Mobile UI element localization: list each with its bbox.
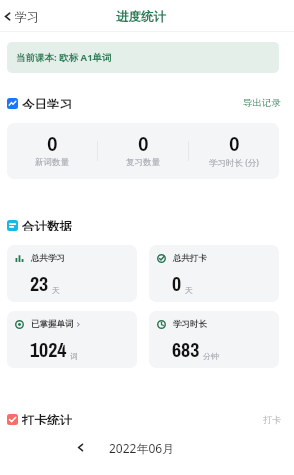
button[interactable]: 0 <box>189 123 279 179</box>
button[interactable]: 学习时长 <box>149 311 279 368</box>
staticText: 词 <box>70 351 78 361</box>
button[interactable]: 已掌握单词 <box>7 311 137 368</box>
staticText: 分钟 <box>203 351 219 361</box>
staticText: 当前课本: 欧标 A1单词 <box>16 51 112 64</box>
staticText: 天 <box>185 285 193 295</box>
staticText: 0 <box>47 130 58 156</box>
staticText: 23 <box>30 270 49 297</box>
staticText: 2022年06月 <box>109 440 175 456</box>
staticText: 学习时长 <box>173 319 207 330</box>
button[interactable]: Previous month <box>71 438 89 456</box>
staticText: 0 <box>138 130 149 156</box>
staticText: 今日学习 <box>22 97 72 109</box>
staticText: 学习时长 (分) <box>209 157 259 169</box>
staticText: 进度统计 <box>116 9 166 25</box>
staticText: 学习 <box>15 9 39 24</box>
staticText: 复习数量 <box>126 157 160 168</box>
staticText: 总共学习 <box>31 253 65 264</box>
staticText: 0 <box>229 130 240 156</box>
staticText: 合计数据 <box>22 219 72 231</box>
staticText: 683 <box>172 336 200 363</box>
staticText: 已掌握单词 <box>31 319 74 330</box>
staticText: 天 <box>52 285 60 295</box>
staticText: 1024 <box>30 336 67 363</box>
button[interactable]: 学习 <box>2 0 39 32</box>
staticText: 新词数量 <box>35 157 69 168</box>
staticText: 总共打卡 <box>173 253 207 264</box>
button[interactable]: 总共学习 <box>7 245 137 302</box>
staticText: 0 <box>172 270 182 297</box>
button[interactable]: 当前课本: 欧标 A1单词 <box>7 42 279 73</box>
staticText: 打卡统计 <box>22 413 72 425</box>
button[interactable]: 0 <box>98 123 188 179</box>
staticText: 打卡 <box>263 414 281 425</box>
button[interactable]: 0 <box>7 123 97 179</box>
button[interactable]: 导出记录 <box>243 97 281 109</box>
button[interactable]: 总共打卡 <box>149 245 279 302</box>
